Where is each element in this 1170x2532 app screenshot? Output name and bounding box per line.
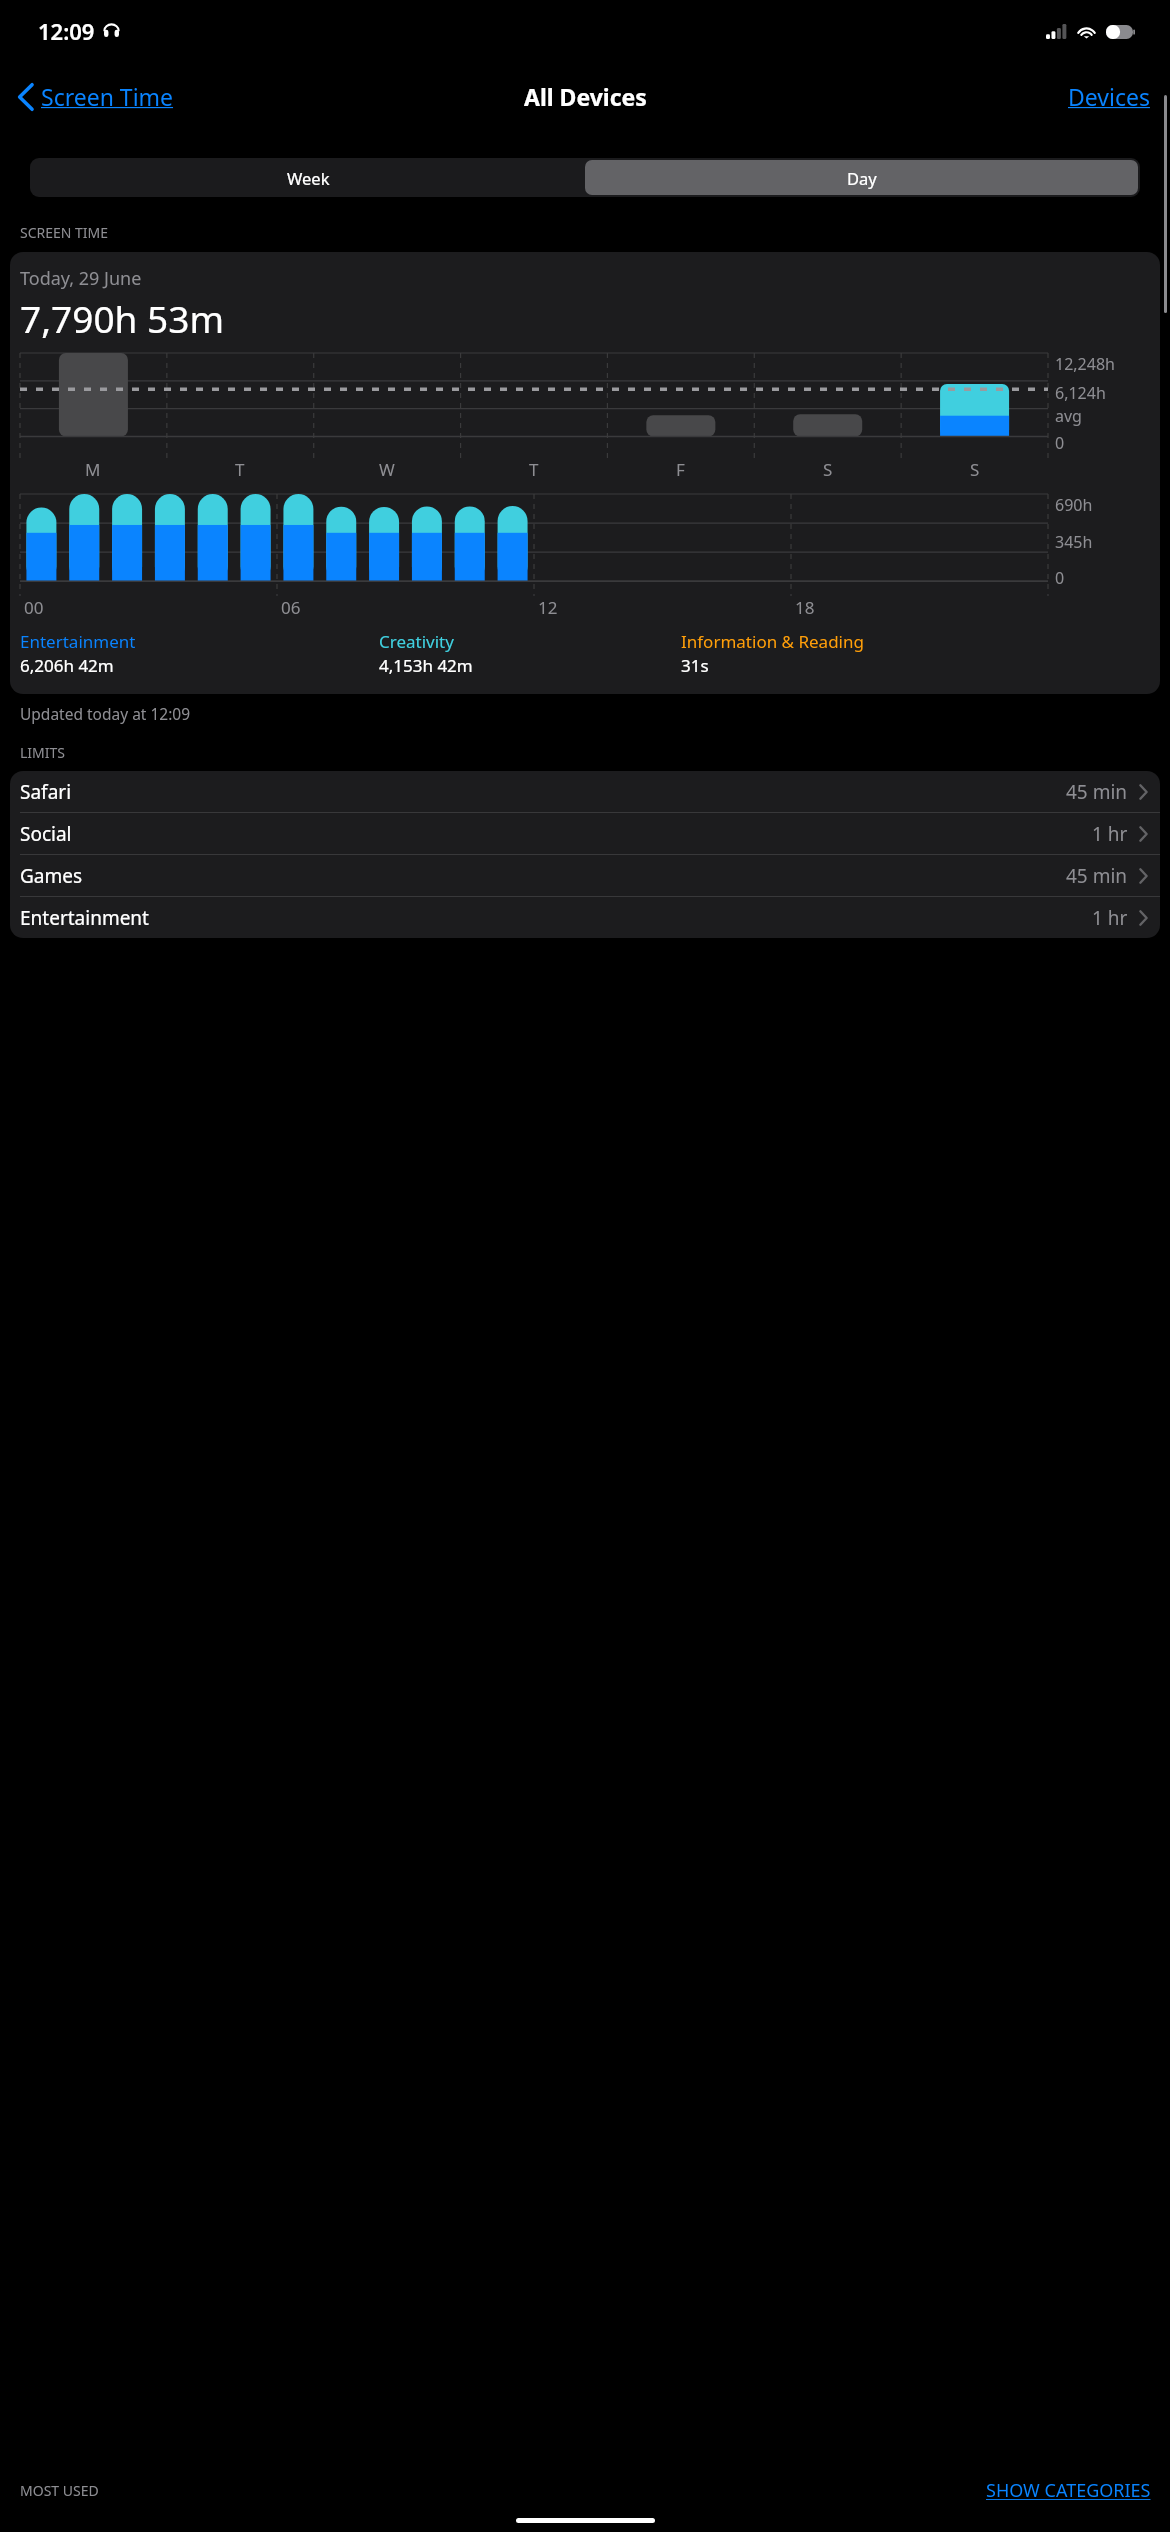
- staticText: 7,790h 53m: [20, 293, 224, 343]
- staticText: S: [970, 458, 980, 481]
- staticText: W: [379, 458, 395, 481]
- staticText: Today, 29 June: [20, 266, 142, 291]
- staticText: 345h: [1055, 531, 1093, 553]
- staticText: MOST USED: [20, 2481, 99, 2500]
- staticText: Entertainment: [20, 905, 149, 931]
- staticText: 31s: [681, 654, 709, 677]
- staticText: Social: [20, 821, 72, 847]
- staticText: Screen Time: [41, 81, 174, 112]
- staticText: 12: [538, 596, 558, 619]
- button[interactable]: Safari: [10, 771, 1160, 812]
- staticText: Games: [20, 863, 83, 889]
- staticText: LIMITS: [20, 743, 65, 762]
- staticText: T: [235, 458, 245, 481]
- staticText: 690h: [1055, 494, 1093, 516]
- staticText: 45 min: [1066, 779, 1128, 805]
- staticText: All Devices: [524, 81, 647, 112]
- staticText: 6,124h: [1055, 382, 1106, 404]
- staticText: 0: [1055, 432, 1065, 454]
- button[interactable]: Week: [32, 160, 585, 195]
- staticText: Information & Reading: [681, 630, 864, 653]
- staticText: 1 hr: [1092, 821, 1128, 847]
- button[interactable]: Devices: [1064, 75, 1154, 118]
- staticText: 12,248h: [1055, 353, 1115, 375]
- staticText: SCREEN TIME: [20, 223, 109, 242]
- staticText: M: [85, 458, 101, 481]
- staticText: 06: [281, 596, 301, 619]
- staticText: 45 min: [1066, 863, 1128, 889]
- staticText: Creativity: [379, 630, 454, 653]
- staticText: F: [676, 458, 685, 481]
- staticText: Day: [847, 167, 877, 189]
- staticText: 6,206h 42m: [20, 654, 114, 677]
- staticText: Entertainment: [20, 630, 136, 653]
- button[interactable]: Screen Time: [14, 75, 178, 118]
- staticText: avg: [1055, 405, 1082, 427]
- staticText: T: [529, 458, 539, 481]
- staticText: Safari: [20, 779, 72, 805]
- button[interactable]: Entertainment: [10, 897, 1160, 938]
- staticText: 4,153h 42m: [379, 654, 473, 677]
- button[interactable]: Day: [585, 160, 1138, 195]
- button[interactable]: SHOW CATEGORIES: [983, 2478, 1154, 2503]
- staticText: Week: [287, 167, 330, 189]
- button[interactable]: Social: [10, 813, 1160, 854]
- staticText: 12:09: [38, 16, 95, 46]
- staticText: 1 hr: [1092, 905, 1128, 931]
- staticText: 00: [24, 596, 44, 619]
- staticText: 0: [1055, 567, 1065, 589]
- staticText: 18: [795, 596, 815, 619]
- button[interactable]: Games: [10, 855, 1160, 896]
- staticText: S: [823, 458, 833, 481]
- staticText: Updated today at 12:09: [20, 703, 191, 724]
